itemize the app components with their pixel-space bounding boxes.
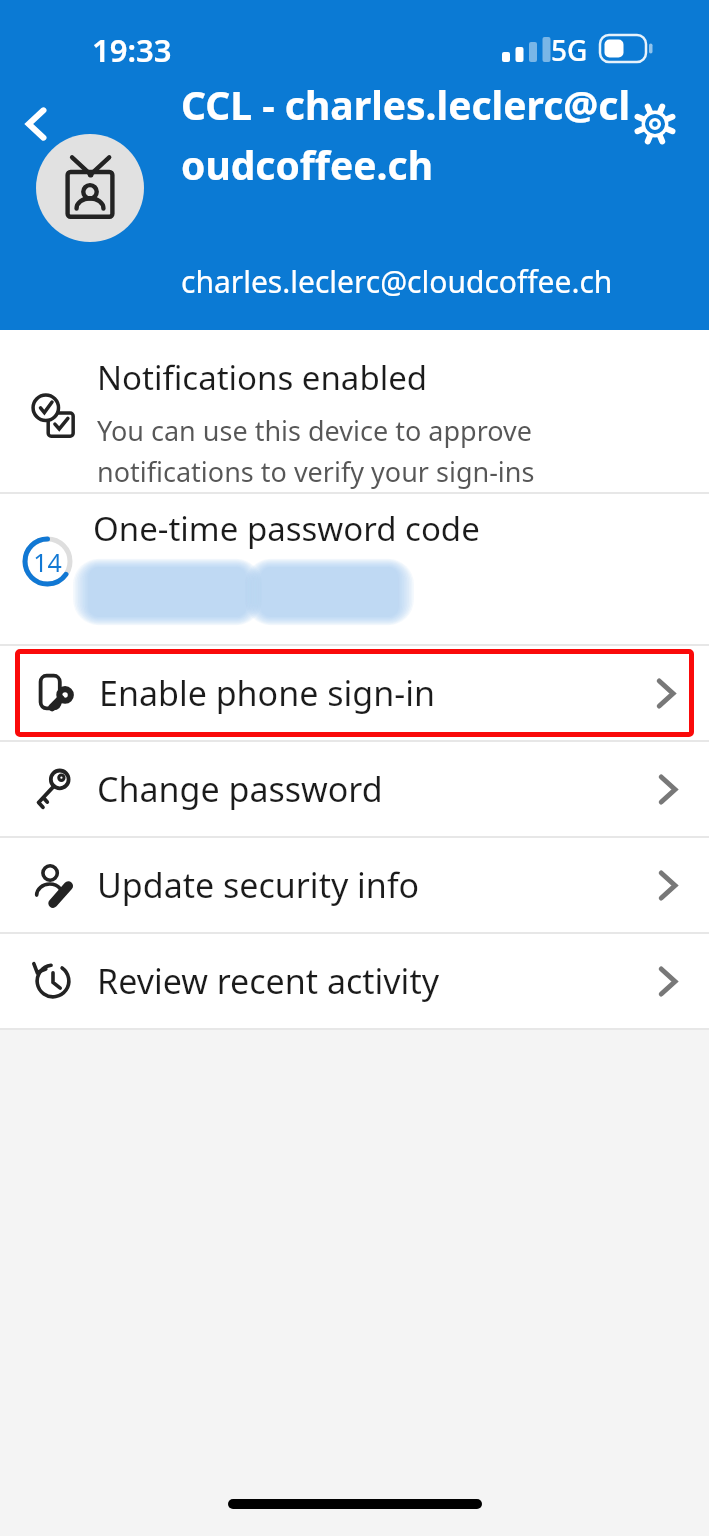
staticText: charles.leclerc@cloudcoffee.ch [181, 261, 613, 302]
staticText: Enable phone sign-in [99, 670, 435, 716]
button[interactable]: Settings [623, 92, 687, 156]
staticText: Change password [97, 766, 383, 812]
button[interactable]: Notifications enabled [0, 330, 709, 492]
button[interactable]: Update security info [0, 838, 709, 932]
staticText: One-time password code [93, 506, 480, 551]
staticText: You can use this device to approve notif… [97, 412, 643, 490]
button[interactable]: 14 [0, 494, 709, 644]
staticText: 5G [551, 31, 588, 69]
button[interactable]: Review recent activity [0, 934, 709, 1028]
staticText: 19:33 [92, 29, 172, 71]
staticText: Update security info [97, 862, 420, 908]
staticText: CCL - charles.leclerc@cloudcoffee.ch [181, 78, 653, 192]
staticText: 14 [33, 545, 62, 579]
button[interactable]: Change password [0, 742, 709, 836]
button[interactable]: Back [6, 93, 68, 155]
staticText: Notifications enabled [97, 355, 428, 400]
staticText: Review recent activity [97, 958, 440, 1004]
button[interactable]: Enable phone sign-in [15, 649, 694, 737]
